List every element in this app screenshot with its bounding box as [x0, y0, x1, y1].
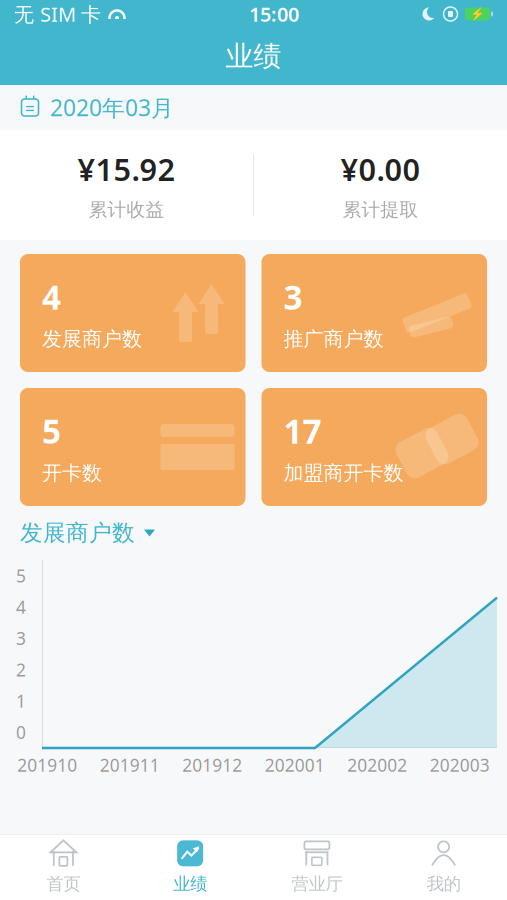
button[interactable]: 营业厅	[253, 834, 380, 900]
staticText: 2	[16, 658, 26, 681]
button[interactable]: 3	[261, 254, 487, 372]
staticText: 开卡数	[42, 461, 102, 485]
staticText: 5	[16, 564, 26, 587]
staticText: 累计收益	[88, 198, 164, 221]
staticText: 202001	[265, 753, 325, 776]
staticText: 3	[283, 275, 302, 319]
staticText: 0	[16, 721, 26, 744]
staticText: 15:00	[249, 1, 299, 27]
button[interactable]: 发展商户数	[0, 510, 507, 556]
staticText: 202002	[347, 753, 407, 776]
staticText: 4	[16, 595, 26, 618]
button[interactable]: 我的	[380, 834, 507, 900]
staticText: 发展商户数	[42, 327, 142, 351]
staticText: 发展商户数	[20, 519, 135, 547]
staticText: 业绩	[173, 873, 207, 895]
staticText: 2020年03月	[50, 92, 174, 122]
button[interactable]: 17	[261, 388, 487, 506]
staticText: 加盟商开卡数	[283, 461, 403, 485]
staticText: 推广商户数	[283, 327, 383, 351]
button[interactable]: 4	[20, 254, 245, 372]
button[interactable]: 业绩	[127, 834, 254, 900]
staticText: 累计提取	[342, 198, 418, 221]
staticText: 202003	[430, 753, 490, 776]
staticText: 201911	[100, 753, 160, 776]
staticText: 5	[42, 409, 61, 453]
staticText: 首页	[46, 873, 80, 895]
staticText: 201910	[17, 753, 77, 776]
staticText: 3	[16, 627, 26, 650]
button[interactable]: 5	[20, 388, 245, 506]
button[interactable]: 2020年03月	[0, 85, 507, 130]
button[interactable]: 首页	[0, 834, 127, 900]
staticText: 4	[42, 275, 61, 319]
staticText: 201912	[182, 753, 242, 776]
staticText: 我的	[427, 873, 461, 895]
staticText: ¥15.92	[77, 149, 175, 189]
staticText: 无 SIM 卡	[14, 1, 101, 27]
staticText: 营业厅	[291, 873, 342, 895]
staticText: 17	[283, 409, 321, 453]
staticText: ⚡	[470, 7, 485, 21]
staticText: 1	[16, 689, 26, 712]
staticText: 业绩	[225, 39, 281, 74]
staticText: ¥0.00	[340, 149, 420, 189]
